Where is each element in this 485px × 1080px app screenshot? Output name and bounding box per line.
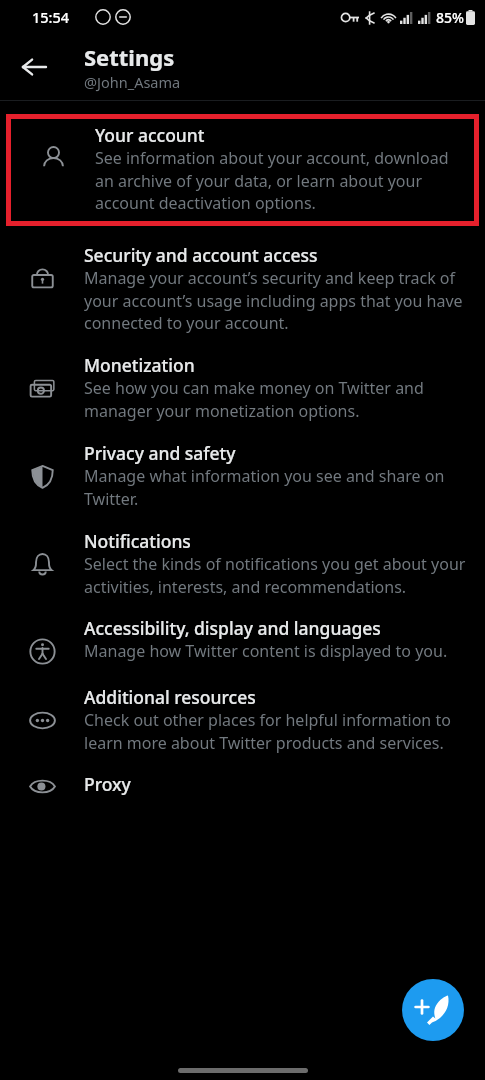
button[interactable]: Accessibility, display and languages: [0, 597, 485, 665]
button[interactable]: Notifications: [0, 509, 485, 597]
button[interactable]: Monetization: [0, 333, 485, 421]
staticText: Monetization: [84, 353, 195, 377]
button[interactable]: Security and account access: [0, 226, 485, 333]
staticText: Manage your account’s security and keep …: [84, 267, 467, 333]
button[interactable]: Your account: [11, 119, 474, 221]
staticText: See how you can make money on Twitter an…: [84, 377, 467, 421]
staticText: @John_Asama: [84, 72, 181, 92]
staticText: Security and account access: [84, 243, 318, 267]
staticText: Proxy: [84, 772, 131, 796]
staticText: Your account: [95, 123, 205, 147]
staticText: Manage how Twitter content is displayed …: [84, 640, 448, 662]
staticText: Additional resources: [84, 685, 256, 709]
button[interactable]: Privacy and safety: [0, 421, 485, 509]
button[interactable]: Proxy: [0, 753, 485, 800]
staticText: See information about your account, down…: [95, 147, 456, 213]
staticText: Settings: [84, 42, 175, 72]
staticText: Select the kinds of notifications you ge…: [84, 553, 467, 597]
staticText: 15:54: [32, 7, 70, 27]
button[interactable]: Navigate back: [12, 45, 56, 89]
button[interactable]: Additional resources: [0, 665, 485, 753]
staticText: Accessibility, display and languages: [84, 616, 381, 640]
staticText: Manage what information you see and shar…: [84, 465, 467, 509]
staticText: Privacy and safety: [84, 441, 236, 465]
staticText: Notifications: [84, 529, 191, 553]
staticText: 85%: [436, 8, 464, 27]
button[interactable]: Compose new Tweet: [402, 979, 464, 1041]
staticText: Check out other places for helpful infor…: [84, 709, 467, 753]
